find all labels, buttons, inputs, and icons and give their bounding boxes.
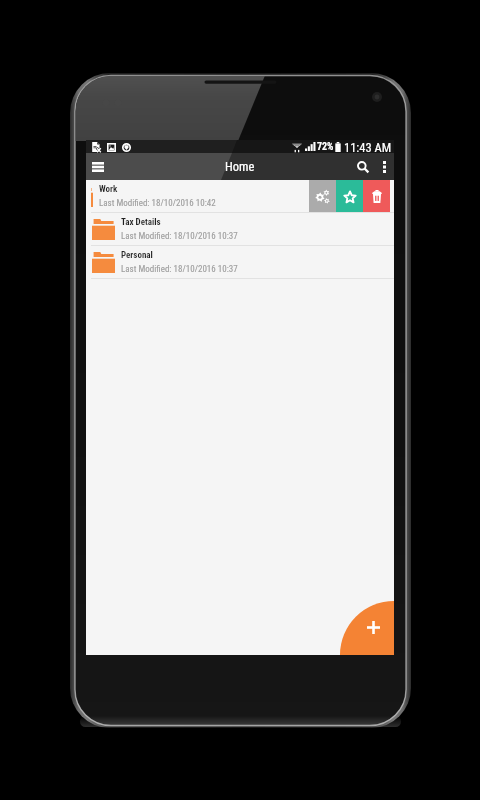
button[interactable]: Add new folder [340,601,394,655]
button[interactable]: More options [375,153,394,180]
button[interactable]: Settings [309,180,336,213]
button[interactable]: Open navigation drawer [86,153,110,180]
button[interactable]: Delete [363,180,390,213]
staticText: Personal [121,250,153,261]
button[interactable]: Search [351,153,375,180]
staticText: 72% [317,141,334,153]
staticText: Last Modified: 18/10/2016 10:42 [99,198,216,209]
button[interactable]: Work [91,180,309,213]
staticText: Last Modified: 18/10/2016 10:37 [121,264,238,275]
staticText: Home [225,159,255,174]
staticText: Tax Details [121,217,161,228]
staticText: 11:43 AM [344,140,392,153]
button[interactable]: Personal [86,246,394,279]
staticText: Last Modified: 18/10/2016 10:37 [121,231,238,242]
button[interactable]: Tax Details [86,213,394,246]
staticText: Work [99,184,118,195]
button[interactable]: Favourite [336,180,363,213]
